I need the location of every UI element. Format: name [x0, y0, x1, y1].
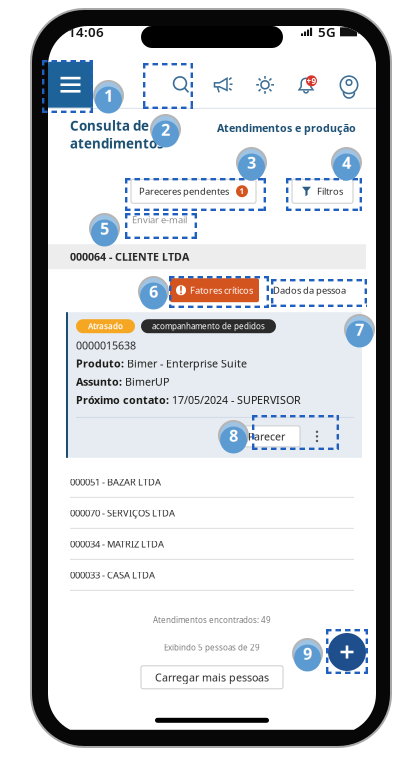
staticText: 8 [229, 425, 238, 446]
staticText: 000064 - CLIENTE LTDA [70, 250, 189, 264]
button[interactable]: Tema [244, 62, 286, 108]
button[interactable]: Carregar mais pessoas [141, 666, 283, 689]
staticText: Dados da pessoa [273, 284, 346, 296]
staticText: ! [179, 283, 182, 297]
staticText: Fatores críticos [190, 284, 253, 296]
staticText: Atendimentos e produção [217, 121, 356, 135]
button[interactable]: 000070 - SERVIÇOS LTDA [48, 498, 376, 529]
button[interactable]: Mais opções [310, 429, 324, 443]
button[interactable]: Notificações [286, 62, 328, 108]
staticText: 5G [318, 23, 336, 41]
staticText: Parecer [248, 429, 285, 443]
button[interactable]: Comunicados [202, 62, 244, 108]
staticText: +9 [306, 75, 316, 86]
button[interactable]: ! [170, 278, 259, 302]
button[interactable]: 000051 - BAZAR LTDA [48, 467, 376, 498]
staticText: 9 [303, 643, 312, 664]
staticText: 000051 - BAZAR LTDA [70, 476, 161, 488]
staticText: 000070 - SERVIÇOS LTDA [70, 507, 175, 519]
button[interactable]: Perfil [328, 62, 370, 108]
button[interactable]: Menu [48, 62, 93, 108]
staticText: 14:06 [68, 23, 104, 41]
staticText: Atendimentos encontrados: 49 [153, 615, 271, 625]
staticText: Pareceres pendentes [139, 185, 229, 197]
staticText: 6 [149, 281, 158, 302]
staticText: 000033 - CASA LTDA [70, 569, 155, 581]
staticText: Enviar e-mail [132, 213, 187, 226]
staticText: Filtros [317, 185, 343, 197]
button[interactable]: Adicionar [328, 633, 366, 671]
button[interactable]: Buscar [160, 62, 202, 108]
staticText: 5 [100, 218, 109, 239]
staticText: 7 [355, 319, 364, 340]
staticText: 2 [161, 119, 170, 140]
staticText: 1 [104, 85, 113, 106]
staticText: Assunto: BimerUP [76, 375, 169, 389]
button[interactable]: 000033 - CASA LTDA [48, 560, 376, 591]
staticText: 4 [342, 152, 351, 173]
staticText: Produto: Bimer - Enterprise Suite [76, 356, 247, 371]
staticText: Próximo contato: 17/05/2024 - SUPERVISOR [76, 393, 301, 407]
staticText: Atrasado [88, 321, 123, 331]
staticText: Carregar mais pessoas [155, 670, 269, 684]
staticText: acompanhamento de pedidos [152, 321, 265, 331]
button[interactable]: Filtros [292, 179, 353, 203]
staticText: 3 [247, 152, 256, 173]
button[interactable]: Parecer [233, 426, 300, 447]
button[interactable]: 000034 - MATRIZ LTDA [48, 529, 376, 560]
button[interactable]: Dados da pessoa [271, 278, 348, 302]
staticText: 0000015638 [76, 338, 136, 352]
button[interactable]: Enviar e-mail [132, 211, 187, 228]
staticText: Exibindo 5 pessoas de 29 [164, 642, 260, 653]
button[interactable]: Pareceres pendentes [131, 179, 256, 203]
staticText: 1 [239, 186, 244, 196]
staticText: Consulta de atendimentos [70, 117, 164, 152]
staticText: 000034 - MATRIZ LTDA [70, 538, 164, 550]
